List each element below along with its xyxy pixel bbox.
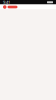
staticText: 9:41 — [3, 0, 10, 5]
